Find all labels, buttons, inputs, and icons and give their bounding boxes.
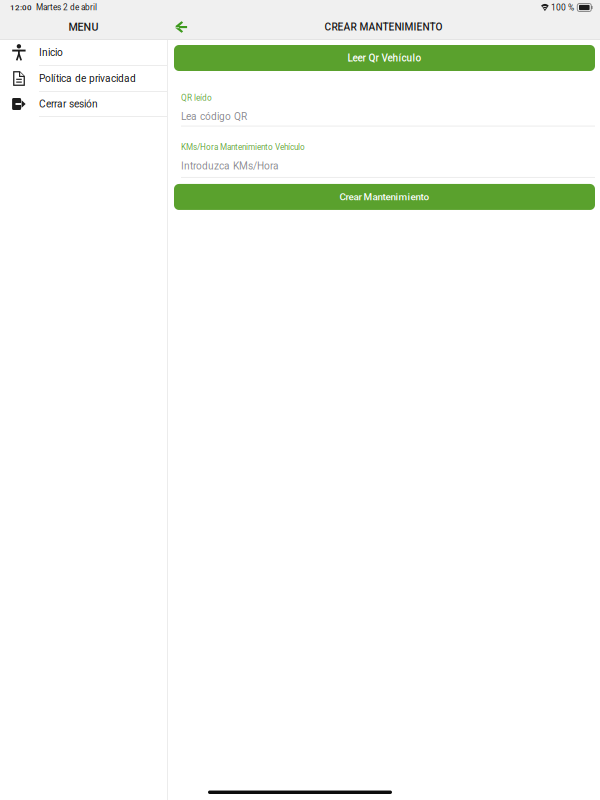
staticText: Crear Mantenimiento	[339, 191, 429, 203]
staticText: Introduzca KMs/Hora	[181, 160, 279, 172]
staticText: Cerrar sesión	[39, 98, 98, 110]
staticText: Política de privacidad	[39, 73, 136, 84]
staticText: QR leído	[181, 93, 212, 103]
button[interactable]: KMs/Hora Mantenimiento Vehículo	[174, 127, 595, 178]
staticText: Lea código QR	[181, 111, 247, 123]
staticText: Inicio	[39, 47, 63, 58]
button[interactable]: Política de privacidad	[0, 66, 167, 91]
staticText: CREAR MANTENIMIENTO	[324, 21, 442, 33]
staticText: Martes 2 de abril	[36, 3, 97, 12]
button[interactable]: Back	[167, 15, 195, 39]
staticText: 12:00	[10, 3, 32, 12]
staticText: MENU	[68, 21, 98, 33]
button[interactable]: Leer Qr Vehículo	[174, 45, 595, 71]
staticText: Leer Qr Vehículo	[347, 52, 421, 64]
button[interactable]: Inicio	[0, 40, 167, 65]
staticText: 100 %	[551, 2, 574, 12]
button[interactable]: Crear Mantenimiento	[174, 184, 595, 210]
button[interactable]: Cerrar sesión	[0, 92, 167, 116]
staticText: KMs/Hora Mantenimiento Vehículo	[181, 143, 305, 152]
button[interactable]: QR leído	[174, 71, 595, 127]
